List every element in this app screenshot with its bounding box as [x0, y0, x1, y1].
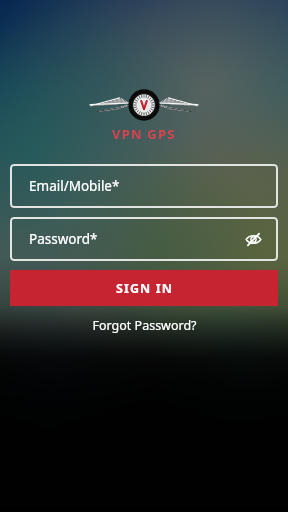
staticText: Forgot Password? [92, 317, 197, 334]
staticText: Email/Mobile* [29, 177, 120, 195]
staticText: SIGN IN [116, 280, 173, 297]
button[interactable]: Forgot Password? [80, 313, 209, 338]
button[interactable]: Password* [10, 217, 278, 261]
staticText: VPN GPS [112, 125, 176, 143]
button[interactable]: Email/Mobile* [10, 164, 278, 208]
button[interactable]: Show password [238, 224, 268, 254]
staticText: Password* [29, 230, 98, 248]
button[interactable]: SIGN IN [10, 270, 278, 306]
